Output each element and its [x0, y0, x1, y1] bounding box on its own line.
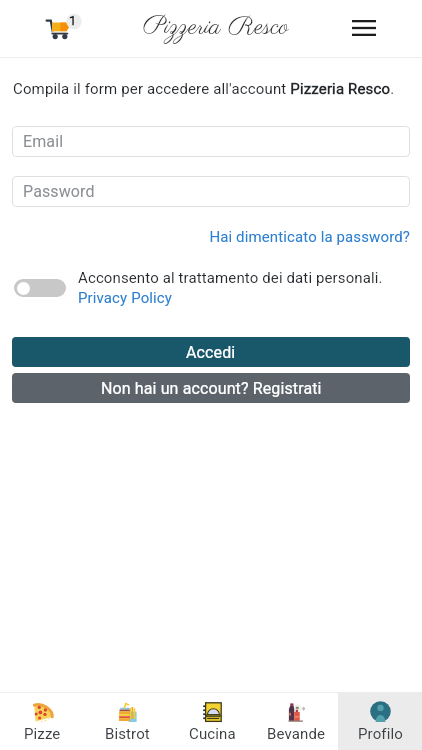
button[interactable]: Menu [344, 9, 384, 49]
button[interactable]: Cucina [170, 693, 254, 750]
staticText: Password [23, 182, 95, 201]
staticText: Cucina [189, 725, 236, 743]
staticText: Bistrot [105, 725, 150, 743]
staticText: Pizzeria Resco [143, 10, 289, 44]
button[interactable]: Email [12, 126, 410, 157]
staticText: Accedi [186, 343, 236, 362]
button[interactable]: Privacy Policy [78, 289, 173, 307]
button[interactable]: Non hai un account? Registrati [12, 373, 410, 403]
button[interactable]: Accedi [12, 337, 410, 367]
staticText: Bevande [267, 725, 326, 743]
button[interactable]: Bevande [254, 693, 338, 750]
button[interactable]: Consent toggle [14, 279, 66, 297]
staticText: Pizze [24, 725, 61, 743]
button[interactable]: Pizze [0, 693, 85, 750]
staticText: Compila il form per accedere all'account… [13, 80, 395, 98]
button[interactable]: Cart [44, 11, 86, 43]
button[interactable]: Hai dimenticato la password? [12, 228, 410, 246]
staticText: 1 [69, 13, 77, 28]
button[interactable]: Password [12, 176, 410, 207]
staticText: Acconsento al trattamento dei dati perso… [78, 269, 383, 287]
staticText: Non hai un account? Registrati [101, 379, 322, 398]
button[interactable]: Bistrot [85, 693, 170, 750]
button[interactable]: Profilo [338, 693, 422, 750]
staticText: Email [23, 132, 64, 151]
staticText: Profilo [358, 725, 403, 743]
